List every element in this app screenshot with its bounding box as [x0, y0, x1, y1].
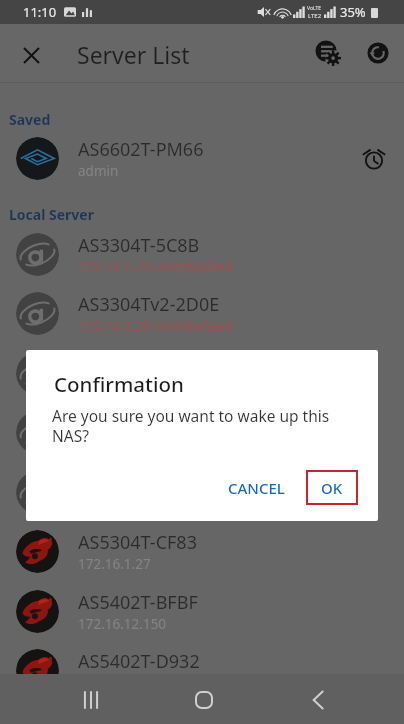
staticText: AS3304T-5C8B	[78, 233, 200, 258]
staticText: AS5402T-D932	[78, 649, 200, 674]
button[interactable]: AS3304Tv2-2D0E	[0, 284, 404, 343]
button[interactable]: Recent apps	[67, 676, 115, 724]
button[interactable]: AS5402T-D932	[0, 641, 404, 700]
staticText: AS5304T-91BC	[78, 411, 200, 436]
staticText: 11:10	[23, 3, 57, 21]
staticText: Local Server	[9, 205, 94, 224]
button[interactable]: Filter settings	[306, 31, 348, 73]
staticText: 35%	[340, 3, 366, 21]
button[interactable]: AS6602T-PM66	[0, 129, 404, 188]
button[interactable]: CANCEL	[219, 470, 293, 506]
button[interactable]: AS5304T-91BC	[0, 403, 404, 462]
staticText: 172.16.1.58	[78, 436, 151, 454]
staticText: OK	[321, 478, 343, 498]
staticText: VoLTE	[307, 5, 322, 12]
staticText: Saved	[9, 110, 51, 129]
button[interactable]: AS5304T-CF83	[0, 522, 404, 581]
button[interactable]: Refresh	[357, 32, 399, 74]
button[interactable]: AS3304T-5C8B	[0, 224, 404, 284]
button[interactable]: OK	[306, 470, 358, 505]
staticText: AS5304T-CF83	[78, 530, 197, 555]
staticText: 172.16.12.150	[78, 615, 167, 633]
button[interactable]: Close	[11, 35, 51, 75]
staticText: AS3304Tv2-2D0E	[78, 292, 220, 317]
button[interactable]: AS5202T-3F1A	[0, 343, 404, 403]
staticText: LTE2	[308, 12, 322, 20]
staticText: CANCEL	[228, 478, 285, 498]
staticText: 172.16.1.44	[78, 377, 151, 395]
staticText: Are you sure you want to wake up this NA…	[52, 405, 344, 446]
staticText: AS6602T-PM66	[78, 137, 204, 162]
button[interactable]: Back	[294, 676, 342, 724]
staticText: 172.16.3.20 Uninitialized	[78, 317, 233, 335]
staticText: 172.16.1.29 Uninitialized	[78, 258, 233, 276]
staticText: admin	[78, 162, 119, 180]
staticText: Confirmation	[54, 370, 184, 398]
staticText: 172.16.1.27	[78, 555, 151, 573]
button[interactable]: Wake up alarm	[352, 137, 396, 181]
staticText: Server List	[77, 39, 190, 70]
button[interactable]: AS6204T-7A22	[0, 462, 404, 522]
staticText: 172.16.12.151	[78, 674, 167, 692]
button[interactable]: Home	[180, 676, 228, 724]
button[interactable]: AS5402T-BFBF	[0, 581, 404, 641]
staticText: AS5402T-BFBF	[78, 590, 198, 615]
